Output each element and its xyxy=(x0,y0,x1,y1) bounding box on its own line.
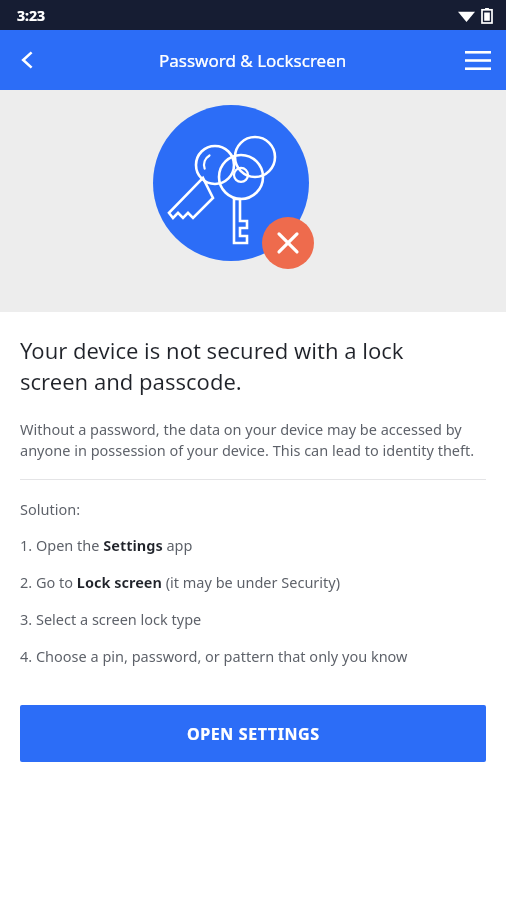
staticText: 4. Choose a pin, password, or pattern th… xyxy=(20,646,408,666)
staticText: Without a password, the data on your dev… xyxy=(20,419,486,461)
staticText: OPEN SETTINGS xyxy=(187,723,320,745)
button[interactable]: Back xyxy=(0,32,56,88)
staticText: 1. Open the Settings app xyxy=(20,535,193,555)
button[interactable]: Menu xyxy=(450,32,506,88)
staticText: Solution: xyxy=(20,499,81,519)
staticText: 2. Go to Lock screen (it may be under Se… xyxy=(20,572,341,592)
button[interactable]: OPEN SETTINGS xyxy=(20,705,486,762)
staticText: 3. Select a screen lock type xyxy=(20,609,202,629)
staticText: Your device is not secured with a lock s… xyxy=(20,335,404,397)
staticText: 3:23 xyxy=(17,6,45,25)
staticText: Password & Lockscreen xyxy=(159,49,347,72)
